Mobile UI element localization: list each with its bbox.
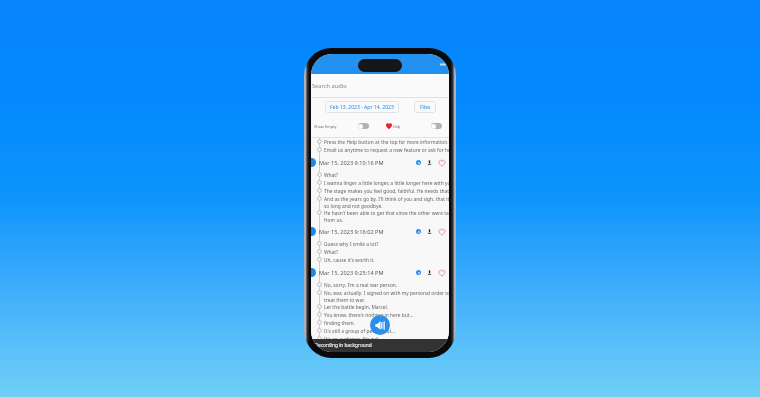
button[interactable]: Press the Help button at the top for mor… bbox=[311, 138, 449, 146]
button[interactable]: Search audio bbox=[311, 74, 449, 97]
staticText: Show Empty bbox=[314, 124, 337, 129]
button[interactable]: Uh, cause it's worth it. bbox=[311, 256, 449, 264]
staticText: Mar 15, 2023 9:10:16 PM bbox=[319, 159, 384, 167]
button[interactable]: And as the years go by, I'll think of yo… bbox=[311, 195, 449, 209]
staticText: Recording in background bbox=[315, 342, 372, 349]
staticText: Search audio bbox=[312, 82, 347, 90]
button[interactable]: Play bbox=[416, 270, 421, 275]
staticText: What? bbox=[324, 172, 339, 179]
button[interactable]: Mar 15, 2023 9:10:16 PM bbox=[311, 154, 449, 171]
button[interactable]: I wanna linger a little longer, a little… bbox=[311, 179, 449, 187]
button[interactable]: Play bbox=[416, 160, 421, 165]
staticText: Mar 15, 2023 9:25:14 PM bbox=[319, 269, 384, 277]
button[interactable]: Toggle bbox=[358, 123, 369, 129]
staticText: Only bbox=[393, 124, 401, 129]
button[interactable]: Guess why I smile a lot? bbox=[311, 240, 449, 248]
button[interactable]: It's an audience. It's evil. bbox=[311, 335, 449, 339]
button[interactable]: finding them. bbox=[311, 319, 449, 327]
staticText: finding them. bbox=[324, 320, 355, 327]
button[interactable]: Favorite bbox=[438, 228, 446, 236]
button[interactable]: The stage makes you feel good, faithful.… bbox=[311, 187, 449, 195]
button[interactable]: He hasn't been able to get that since th… bbox=[311, 209, 449, 223]
staticText: The stage makes you feel good, faithful.… bbox=[324, 188, 449, 195]
staticText: I wanna linger a little longer, a little… bbox=[324, 180, 449, 187]
staticText: No, war, actually. I signed on with my p… bbox=[324, 290, 449, 303]
staticText: You know, there's nothing in here but... bbox=[324, 312, 414, 319]
button[interactable]: Play audio bbox=[370, 315, 390, 335]
staticText: Uh, cause it's worth it. bbox=[324, 257, 375, 264]
staticText: And as the years go by, I'll think of yo… bbox=[324, 196, 449, 209]
staticText: Email us anytime to request a new featur… bbox=[324, 147, 449, 154]
button[interactable]: Favorite bbox=[438, 269, 446, 277]
staticText: What? bbox=[324, 249, 339, 256]
staticText: No, sorry, I'm a real war person. bbox=[324, 282, 398, 289]
button[interactable]: What? bbox=[311, 248, 449, 256]
button[interactable]: Let the battle begin, Marcel. bbox=[311, 303, 449, 311]
staticText: Press the Help button at the top for mor… bbox=[324, 139, 449, 146]
button[interactable]: Download bbox=[427, 229, 432, 234]
button[interactable]: No, war, actually. I signed on with my p… bbox=[311, 289, 449, 303]
button[interactable]: Download bbox=[427, 270, 432, 275]
staticText: Feb 13, 2023 - Apr 14, 2023 bbox=[330, 104, 394, 111]
button[interactable]: Mar 15, 2023 9:25:14 PM bbox=[311, 264, 449, 281]
staticText: He hasn't been able to get that since th… bbox=[324, 210, 449, 223]
staticText: Guess why I smile a lot? bbox=[324, 241, 379, 248]
button[interactable]: Play bbox=[416, 229, 421, 234]
button[interactable]: You know, there's nothing in here but... bbox=[311, 311, 449, 319]
button[interactable]: It's still a group of people but... bbox=[311, 327, 449, 335]
staticText: It's still a group of people but... bbox=[324, 328, 396, 335]
button[interactable]: No, sorry, I'm a real war person. bbox=[311, 281, 449, 289]
button[interactable]: What? bbox=[311, 171, 449, 179]
staticText: Files bbox=[420, 104, 431, 111]
button[interactable]: Email us anytime to request a new featur… bbox=[311, 146, 449, 154]
staticText: It's an audience. It's evil. bbox=[324, 336, 380, 339]
button[interactable]: Favorite bbox=[438, 159, 446, 167]
staticText: Mar 15, 2023 9:16:02 PM bbox=[319, 228, 384, 236]
button[interactable]: Feb 13, 2023 - Apr 14, 2023 bbox=[325, 101, 399, 113]
button[interactable]: Mar 15, 2023 9:16:02 PM bbox=[311, 223, 449, 240]
button[interactable]: Toggle bbox=[431, 123, 442, 129]
button[interactable]: Files bbox=[414, 101, 436, 113]
button[interactable]: Download bbox=[427, 160, 432, 165]
staticText: Let the battle begin, Marcel. bbox=[324, 304, 389, 311]
